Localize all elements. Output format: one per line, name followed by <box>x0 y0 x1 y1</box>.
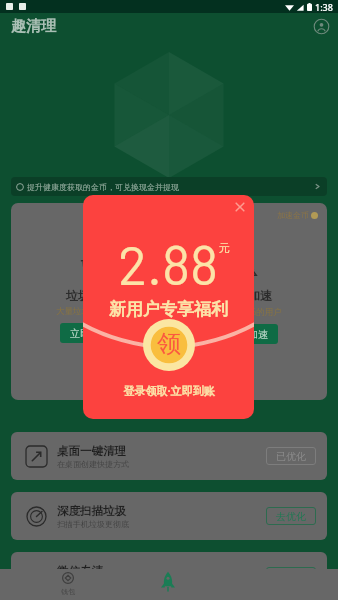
staticText: 2.88 <box>118 231 219 296</box>
staticText: 深度扫描垃圾 <box>57 504 126 518</box>
staticText: 清理微信缓存垃圾 <box>57 579 121 589</box>
staticText: 已超越84%的用户 <box>214 306 282 318</box>
button[interactable]: Boost <box>160 571 176 591</box>
button[interactable]: 去优化 <box>266 567 316 585</box>
button[interactable]: 微信专清 <box>11 552 327 600</box>
staticText: 立即加速 <box>228 328 268 341</box>
staticText: 登录领取·立即到账 <box>123 383 215 398</box>
button[interactable]: 已优化 <box>266 447 316 465</box>
staticText: 钱包 <box>61 587 75 596</box>
button[interactable]: 深度扫描垃圾 <box>11 492 327 540</box>
staticText: 领 <box>157 329 181 359</box>
button[interactable]: 手机加速 <box>214 255 282 344</box>
button[interactable]: 钱包 <box>23 569 113 600</box>
staticText: 在桌面创建快捷方式 <box>57 459 129 469</box>
staticText: 微信专清 <box>57 564 103 578</box>
button[interactable]: 去优化 <box>266 507 316 525</box>
staticText: 垃圾清理 <box>66 288 114 303</box>
staticText: 已优化 <box>276 450 306 463</box>
staticText: 大量垃圾等待清理 <box>56 306 124 317</box>
staticText: 去优化 <box>276 510 306 523</box>
staticText: 手机加速 <box>224 288 272 303</box>
staticText: 新用户专享福利 <box>109 299 228 320</box>
staticText: 提升健康度获取的金币，可兑换现金并提现 <box>27 182 314 192</box>
button[interactable]: Close <box>234 201 246 213</box>
button[interactable]: Account <box>313 18 330 35</box>
staticText: 桌面一键清理 <box>57 444 126 458</box>
staticText: 加速金币 <box>277 210 309 220</box>
staticText: 立即清理 <box>70 327 110 340</box>
staticText: 1:38 <box>315 1 333 13</box>
button[interactable]: 桌面一键清理 <box>11 432 327 480</box>
staticText: 元 <box>219 241 230 255</box>
button[interactable]: 立即清理 <box>60 323 120 343</box>
button[interactable]: 垃圾清理 <box>56 255 124 343</box>
staticText: 扫描手机垃圾更彻底 <box>57 519 129 529</box>
button[interactable]: 提升健康度获取的金币，可兑换现金并提现 <box>11 177 327 196</box>
button[interactable]: 立即加速 <box>218 324 278 344</box>
button[interactable]: Claim reward <box>143 319 195 371</box>
staticText: 趣清理 <box>11 17 56 36</box>
